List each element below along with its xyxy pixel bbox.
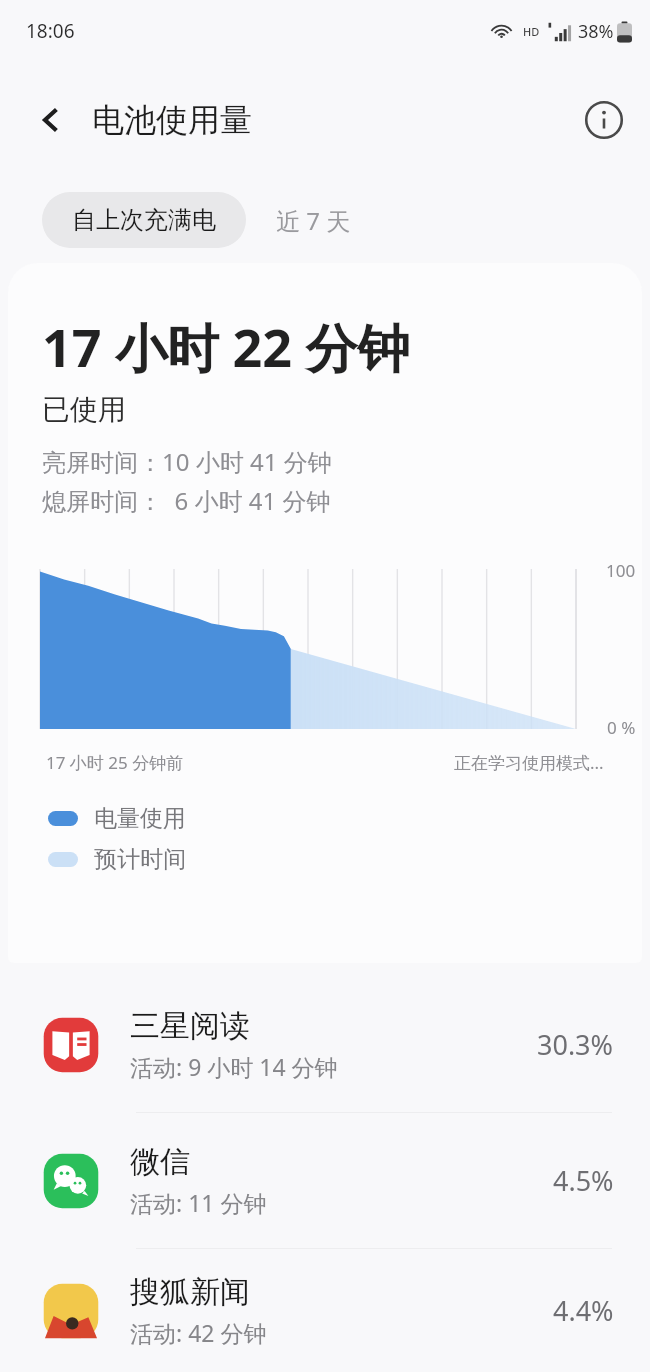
button[interactable]: 搜狐新闻 bbox=[0, 1249, 650, 1372]
staticText: 0 % bbox=[607, 716, 636, 739]
staticText: 熄屏时间： 6 小时 41 分钟 bbox=[42, 484, 331, 517]
button[interactable]: 近 7 天 bbox=[246, 192, 381, 248]
button[interactable]: Information bbox=[580, 96, 628, 144]
staticText: 4.5% bbox=[553, 1162, 614, 1199]
button[interactable]: 三星阅读 bbox=[0, 977, 650, 1113]
staticText: 30.3% bbox=[537, 1026, 614, 1063]
staticText: 已使用 bbox=[42, 392, 126, 427]
staticText: 近 7 天 bbox=[276, 204, 351, 237]
staticText: 正在学习使用模式... bbox=[454, 751, 604, 774]
staticText: 活动: 11 分钟 bbox=[130, 1187, 267, 1218]
staticText: 17 小时 22 分钟 bbox=[42, 311, 410, 382]
staticText: 18:06 bbox=[26, 18, 75, 44]
staticText: 38% bbox=[578, 19, 614, 44]
staticText: 亮屏时间：10 小时 41 分钟 bbox=[42, 445, 332, 478]
staticText: 活动: 42 分钟 bbox=[130, 1317, 267, 1348]
staticText: 预计时间 bbox=[94, 845, 186, 874]
staticText: 搜狐新闻 bbox=[130, 1273, 250, 1311]
staticText: 电池使用量 bbox=[92, 100, 252, 140]
button[interactable]: Back bbox=[30, 98, 74, 142]
staticText: 活动: 9 小时 14 分钟 bbox=[130, 1051, 338, 1082]
button[interactable]: 自上次充满电 bbox=[42, 192, 246, 248]
staticText: 电量使用 bbox=[94, 804, 186, 833]
staticText: HD bbox=[523, 24, 540, 39]
staticText: 自上次充满电 bbox=[72, 205, 216, 235]
staticText: 100 bbox=[606, 559, 636, 582]
button[interactable]: 微信 bbox=[0, 1113, 650, 1249]
staticText: 三星阅读 bbox=[130, 1007, 250, 1045]
staticText: 4.4% bbox=[553, 1292, 614, 1329]
staticText: 17 小时 25 分钟前 bbox=[46, 751, 184, 774]
staticText: 微信 bbox=[130, 1143, 190, 1181]
